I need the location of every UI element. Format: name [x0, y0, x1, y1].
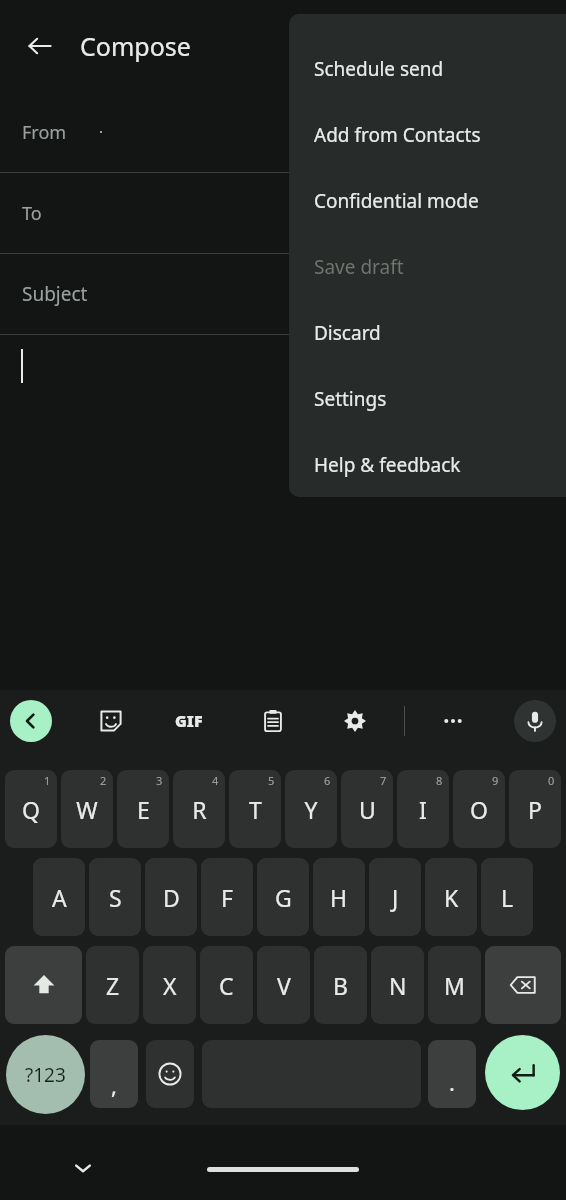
button[interactable]: M [428, 946, 481, 1024]
button[interactable]: Back to keyboard [10, 700, 52, 742]
staticText: GIF [175, 710, 203, 732]
button[interactable]: R [173, 770, 225, 848]
staticText: Z [106, 970, 120, 1001]
staticText: G [275, 882, 292, 913]
button[interactable]: E [117, 770, 169, 848]
button[interactable]: Help & feedback [289, 432, 566, 497]
staticText: U [359, 794, 376, 825]
staticText: Discard [314, 320, 381, 346]
staticText: ?123 [25, 1062, 66, 1088]
staticText: W [76, 794, 98, 825]
staticText: Subject [22, 281, 88, 307]
button[interactable]: A [33, 858, 85, 936]
staticText: 3 [156, 773, 163, 788]
staticText: B [333, 970, 348, 1001]
button[interactable]: B [314, 946, 367, 1024]
button[interactable]: U [341, 770, 393, 848]
staticText: 5 [268, 773, 275, 788]
button[interactable]: C [200, 946, 253, 1024]
staticText: S [109, 882, 122, 913]
staticText: V [277, 970, 291, 1001]
staticText: 2 [100, 773, 107, 788]
button[interactable]: From [0, 92, 566, 172]
staticText: X [163, 970, 177, 1001]
button[interactable]: O [453, 770, 505, 848]
staticText: C [219, 970, 234, 1001]
staticText: T [249, 794, 262, 825]
button[interactable]: L [481, 858, 533, 936]
button[interactable]: Back [16, 22, 64, 70]
button[interactable]: F [201, 858, 253, 936]
button[interactable]: J [369, 858, 421, 936]
staticText: P [528, 794, 542, 825]
staticText: To [22, 201, 42, 226]
staticText: H [330, 882, 348, 913]
button[interactable]: Emoji [146, 1040, 194, 1108]
button[interactable]: Subject [0, 254, 566, 334]
button[interactable]: Shift [5, 946, 82, 1024]
staticText: 7 [380, 773, 387, 788]
staticText: 9 [492, 773, 499, 788]
button[interactable]: Y [285, 770, 337, 848]
staticText: 6 [324, 773, 331, 788]
button[interactable]: N [371, 946, 424, 1024]
staticText: Q [22, 794, 40, 825]
button[interactable]: , [90, 1040, 138, 1108]
staticText: Compose [80, 29, 191, 63]
button[interactable]: Q [5, 770, 57, 848]
staticText: I [419, 794, 427, 825]
staticText: R [192, 794, 207, 825]
button[interactable]: H [313, 858, 365, 936]
button[interactable]: Z [86, 946, 139, 1024]
staticText: Add from Contacts [314, 122, 481, 148]
button[interactable]: K [425, 858, 477, 936]
staticText: L [501, 882, 514, 913]
staticText: Save draft [314, 254, 404, 280]
button[interactable] [0, 335, 566, 405]
button[interactable]: V [257, 946, 310, 1024]
button[interactable]: P [509, 770, 561, 848]
button[interactable]: Hide keyboard [60, 1145, 106, 1191]
button[interactable]: S [89, 858, 141, 936]
button[interactable]: Stickers [90, 700, 132, 742]
button[interactable]: Schedule send [289, 36, 566, 102]
staticText: F [221, 882, 233, 913]
button[interactable]: Voice input [514, 700, 556, 742]
button[interactable]: I [397, 770, 449, 848]
button[interactable]: ?123 [6, 1035, 85, 1114]
button[interactable]: D [145, 858, 197, 936]
button[interactable]: T [229, 770, 281, 848]
staticText: 1 [44, 773, 51, 788]
button[interactable]: To [0, 173, 566, 253]
staticText: D [163, 882, 180, 913]
button[interactable]: Backspace [485, 946, 561, 1024]
staticText: 4 [212, 773, 219, 788]
button[interactable]: Clipboard [252, 700, 294, 742]
staticText: N [389, 970, 407, 1001]
button[interactable]: Add from Contacts [289, 102, 566, 168]
staticText: Settings [314, 386, 387, 412]
staticText: A [52, 882, 67, 913]
staticText: E [137, 794, 150, 825]
staticText: From [22, 120, 67, 145]
staticText: Y [304, 794, 318, 825]
staticText: , [111, 1070, 117, 1100]
staticText: 0 [548, 773, 555, 788]
button[interactable]: More options [432, 700, 474, 742]
button[interactable]: Settings [334, 700, 376, 742]
staticText: 8 [436, 773, 443, 788]
staticText: Confidential mode [314, 188, 479, 214]
button[interactable]: Settings [289, 366, 566, 432]
button[interactable]: . [428, 1040, 476, 1108]
button[interactable]: Confidential mode [289, 168, 566, 234]
button[interactable]: W [61, 770, 113, 848]
staticText: M [444, 970, 465, 1001]
staticText: Schedule send [314, 56, 444, 82]
button[interactable]: Save draft [289, 234, 566, 300]
button[interactable]: Discard [289, 300, 566, 366]
button[interactable]: X [143, 946, 196, 1024]
button[interactable]: GIF [168, 700, 210, 742]
button[interactable]: G [257, 858, 309, 936]
button[interactable]: Enter [485, 1035, 560, 1110]
